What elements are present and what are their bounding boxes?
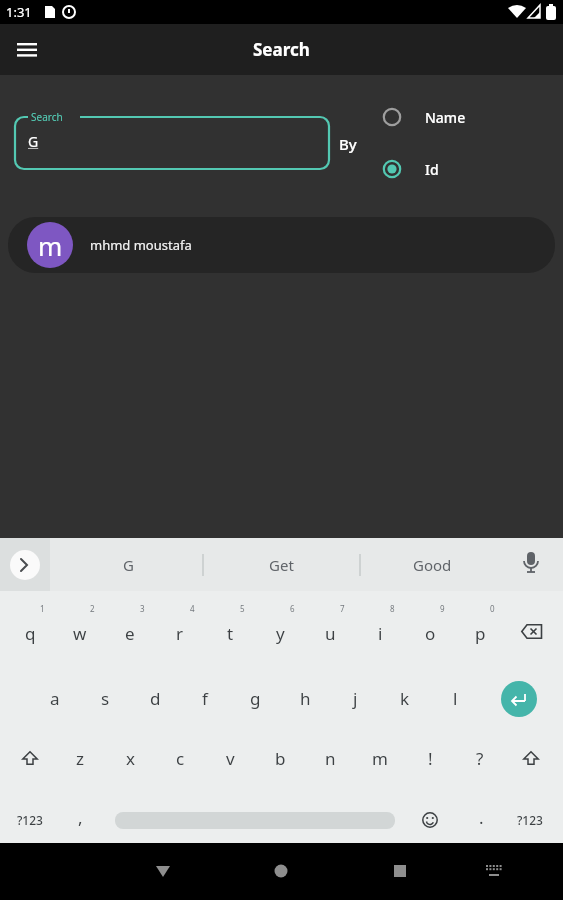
button[interactable]: b bbox=[260, 742, 300, 774]
button[interactable] bbox=[143, 851, 183, 891]
button[interactable]: ! bbox=[410, 742, 450, 774]
button[interactable]: ?123 bbox=[10, 804, 50, 836]
staticText: Id bbox=[425, 160, 439, 179]
button[interactable]: q bbox=[10, 617, 50, 649]
button[interactable]: j bbox=[335, 682, 375, 714]
button[interactable]: ?123 bbox=[510, 804, 550, 836]
staticText: z bbox=[76, 747, 84, 770]
staticText: e bbox=[125, 622, 135, 645]
staticText: 3 bbox=[140, 603, 145, 614]
staticText: m bbox=[372, 747, 388, 770]
staticText: 1 bbox=[40, 603, 45, 614]
staticText: Search bbox=[31, 110, 63, 124]
button[interactable]: G bbox=[108, 549, 148, 581]
button[interactable] bbox=[10, 742, 50, 774]
button[interactable] bbox=[512, 615, 552, 647]
staticText: j bbox=[353, 687, 358, 710]
button[interactable] bbox=[511, 742, 551, 774]
button[interactable]: w bbox=[60, 617, 100, 649]
button[interactable]: e bbox=[110, 617, 150, 649]
staticText: p bbox=[475, 622, 486, 645]
button[interactable]: c bbox=[160, 742, 200, 774]
staticText: 0 bbox=[490, 603, 495, 614]
staticText: v bbox=[226, 747, 235, 770]
staticText: a bbox=[50, 687, 60, 710]
staticText: c bbox=[176, 747, 185, 770]
staticText: ?123 bbox=[517, 812, 543, 828]
button[interactable]: x bbox=[110, 742, 150, 774]
button[interactable]: y bbox=[260, 617, 300, 649]
button[interactable]: s bbox=[85, 682, 125, 714]
staticText: 7 bbox=[340, 603, 345, 614]
button[interactable]: Id bbox=[376, 153, 439, 185]
button[interactable]: v bbox=[210, 742, 250, 774]
staticText: . bbox=[479, 806, 484, 829]
button[interactable]: . bbox=[461, 801, 501, 833]
button[interactable]: n bbox=[310, 742, 350, 774]
staticText: l bbox=[453, 687, 458, 710]
button[interactable]: m bbox=[360, 742, 400, 774]
staticText: h bbox=[300, 687, 311, 710]
button[interactable] bbox=[261, 851, 301, 891]
staticText: 9 bbox=[440, 603, 445, 614]
button[interactable] bbox=[380, 851, 420, 891]
staticText: i bbox=[378, 622, 383, 645]
staticText: q bbox=[25, 622, 36, 645]
button[interactable]: z bbox=[60, 742, 100, 774]
button[interactable]: u bbox=[310, 617, 350, 649]
button[interactable]: Good bbox=[412, 549, 452, 581]
button[interactable]: f bbox=[185, 682, 225, 714]
button[interactable]: , bbox=[60, 801, 100, 833]
button[interactable]: d bbox=[135, 682, 175, 714]
staticText: Name bbox=[425, 108, 466, 127]
staticText: m bbox=[38, 228, 63, 263]
staticText: 8 bbox=[390, 603, 395, 614]
staticText: G bbox=[123, 555, 134, 575]
staticText: , bbox=[78, 806, 83, 829]
staticText: 6 bbox=[290, 603, 295, 614]
button[interactable]: i bbox=[360, 617, 400, 649]
staticText: G bbox=[28, 132, 39, 151]
button[interactable]: h bbox=[285, 682, 325, 714]
staticText: x bbox=[126, 747, 135, 770]
staticText: mhmd moustafa bbox=[90, 236, 192, 254]
staticText: 1:31 bbox=[6, 3, 32, 21]
button[interactable] bbox=[474, 851, 514, 891]
staticText: ?123 bbox=[17, 812, 43, 828]
button[interactable]: r bbox=[160, 617, 200, 649]
staticText: ! bbox=[428, 747, 433, 770]
button[interactable] bbox=[0, 538, 50, 591]
button[interactable]: g bbox=[235, 682, 275, 714]
button[interactable]: k bbox=[385, 682, 425, 714]
staticText: o bbox=[425, 622, 436, 645]
button[interactable]: p bbox=[460, 617, 500, 649]
staticText: d bbox=[150, 687, 161, 710]
button[interactable] bbox=[8, 31, 46, 69]
staticText: r bbox=[176, 622, 184, 645]
button[interactable]: l bbox=[435, 682, 475, 714]
button[interactable]: G bbox=[14, 116, 330, 170]
staticText: Search bbox=[253, 38, 310, 61]
button[interactable]: a bbox=[35, 682, 75, 714]
button[interactable]: Get bbox=[261, 549, 301, 581]
staticText: 5 bbox=[240, 603, 245, 614]
button[interactable] bbox=[410, 804, 450, 836]
staticText: s bbox=[101, 687, 110, 710]
staticText: f bbox=[202, 687, 208, 710]
staticText: n bbox=[325, 747, 336, 770]
button[interactable]: ? bbox=[460, 742, 500, 774]
staticText: u bbox=[325, 622, 336, 645]
staticText: w bbox=[73, 622, 87, 645]
staticText: Get bbox=[269, 555, 294, 575]
staticText: g bbox=[250, 687, 261, 710]
staticText: By bbox=[339, 134, 357, 154]
button[interactable]: t bbox=[210, 617, 250, 649]
staticText: Good bbox=[413, 555, 452, 575]
staticText: y bbox=[276, 622, 285, 645]
button[interactable]: o bbox=[410, 617, 450, 649]
button[interactable]: Name bbox=[376, 101, 466, 133]
button[interactable]: m bbox=[8, 217, 555, 273]
button[interactable] bbox=[501, 681, 537, 717]
staticText: b bbox=[275, 747, 286, 770]
